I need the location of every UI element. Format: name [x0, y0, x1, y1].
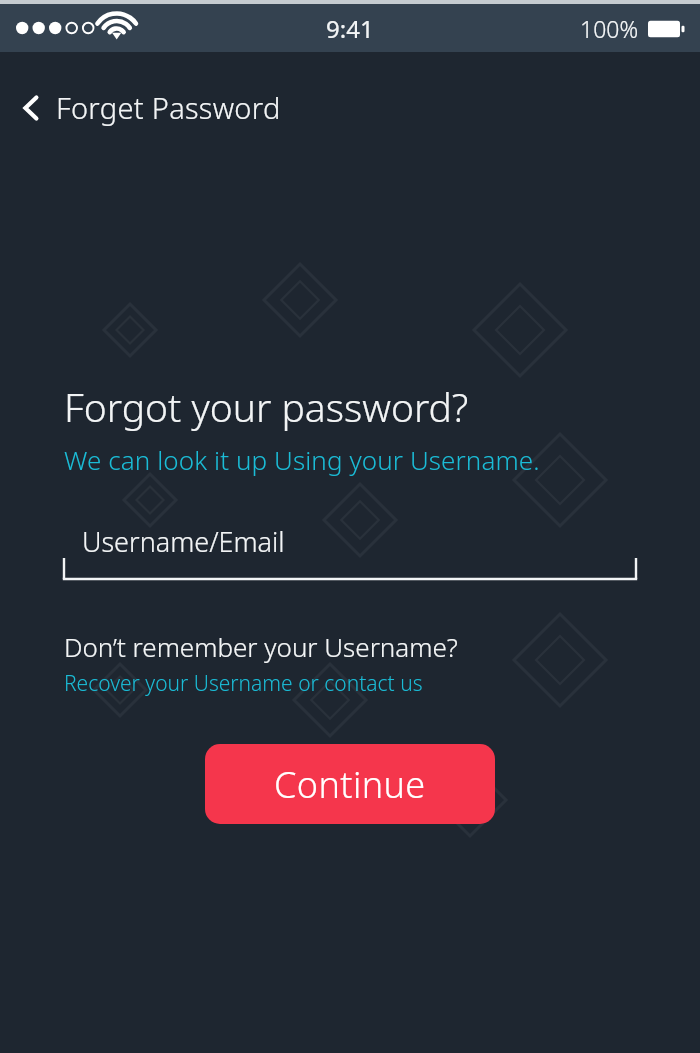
staticText: Forget Password: [56, 88, 281, 127]
staticText: Continue: [274, 760, 426, 809]
button[interactable]: Continue: [205, 744, 495, 824]
staticText: Forgot your password?: [64, 380, 469, 433]
staticText: 100%: [580, 13, 639, 44]
staticText: Don’t remember your Username?: [64, 629, 458, 664]
staticText: Username/Email: [82, 523, 285, 560]
other: Back: [22, 93, 42, 123]
staticText: We can look it up Using your Username.: [64, 442, 540, 477]
staticText: 9:41: [326, 12, 374, 45]
staticText: Recover your Username or contact us: [64, 669, 423, 698]
button[interactable]: Back: [0, 82, 299, 137]
button[interactable]: Username/Email: [0, 519, 700, 587]
button[interactable]: Recover your Username or contact us: [64, 669, 423, 698]
